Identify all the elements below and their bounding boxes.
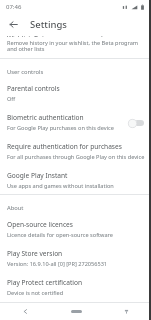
button[interactable]: Google Play Instant (0, 165, 151, 194)
staticText: Parental controls (7, 84, 60, 93)
button[interactable]: Parental controls (0, 78, 151, 107)
staticText: Biometric authentication (7, 113, 84, 122)
staticText: Settings (30, 18, 67, 31)
staticText: Licence details for open-source software (7, 231, 113, 239)
button[interactable]: Wishlist, Beta programmes and more (0, 34, 151, 58)
button[interactable]: Back (5, 16, 21, 32)
staticText: Open-source licences (7, 220, 73, 229)
staticText: About (7, 204, 24, 212)
button[interactable]: Biometric authentication toggle (128, 118, 145, 128)
staticText: Google Play Instant (7, 171, 68, 180)
staticText: Off (7, 95, 16, 103)
button[interactable]: Back (18, 304, 32, 318)
button[interactable]: Biometric authentication (0, 107, 151, 136)
staticText: Play Protect certification (7, 278, 83, 287)
staticText: For all purchases through Google Play on… (7, 153, 145, 161)
button[interactable]: Recent apps (119, 304, 133, 318)
button[interactable]: Open-source licences (0, 214, 151, 243)
button[interactable]: Home (67, 305, 85, 317)
staticText: User controls (7, 68, 44, 76)
button[interactable]: Require authentication for purchases (0, 136, 151, 165)
staticText: Wishlist, Beta programmes and more (7, 34, 121, 37)
staticText: Remove history in your wishlist, the Bet… (7, 39, 143, 53)
staticText: Version: 16.9.10-all [0] [PR] 272056531 (7, 260, 108, 268)
button[interactable]: Play Store version (0, 243, 151, 272)
staticText: 07:46 (6, 3, 22, 11)
staticText: Device is not certified (7, 289, 64, 297)
staticText: Use apps and games without installation (7, 182, 114, 190)
staticText: Require authentication for purchases (7, 142, 122, 151)
staticText: For Google Play purchases on this device (7, 124, 114, 132)
staticText: Play Store version (7, 249, 63, 258)
button[interactable]: Play Protect certification (0, 272, 151, 301)
